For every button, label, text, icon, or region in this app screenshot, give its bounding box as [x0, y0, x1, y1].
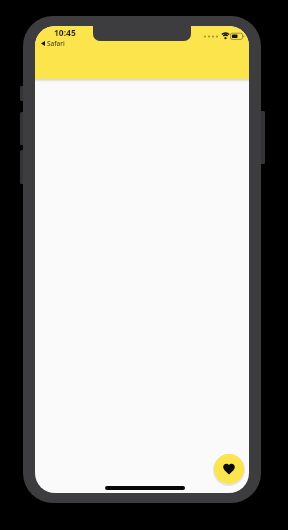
button[interactable]	[214, 454, 244, 484]
button[interactable]: Safari	[41, 39, 65, 48]
staticText: Safari	[47, 39, 65, 48]
staticText: 10:45	[54, 27, 76, 39]
